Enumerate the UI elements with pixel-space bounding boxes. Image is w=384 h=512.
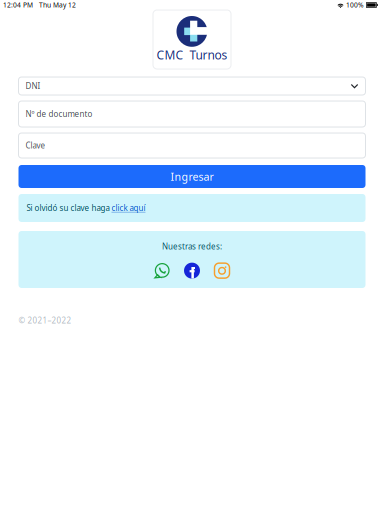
staticText: Clave	[25, 140, 45, 151]
button[interactable]: Instagram	[214, 263, 230, 279]
staticText: 12:04 PM	[3, 1, 33, 9]
staticText: CMC Turnos	[156, 47, 227, 63]
staticText: Nuestras redes:	[162, 241, 222, 252]
staticText: click aquí	[111, 203, 145, 213]
button[interactable]: WhatsApp	[154, 263, 170, 279]
staticText: DNI	[25, 81, 40, 91]
button[interactable]: Ingresar	[18, 165, 365, 188]
button[interactable]: click aquí	[111, 203, 145, 213]
button[interactable]: DNI	[18, 77, 365, 95]
staticText: Nº de documento	[25, 109, 92, 119]
staticText: Ingresar	[170, 169, 213, 184]
staticText: Si olvidó su clave haga	[26, 203, 111, 213]
staticText: Thu May 12	[39, 1, 76, 9]
staticText: 100%	[346, 1, 364, 9]
button[interactable]: Nº de documento	[18, 101, 365, 127]
button[interactable]: Facebook	[184, 263, 200, 279]
button[interactable]: Clave	[18, 133, 365, 158]
staticText: © 2021–2022	[18, 315, 71, 326]
